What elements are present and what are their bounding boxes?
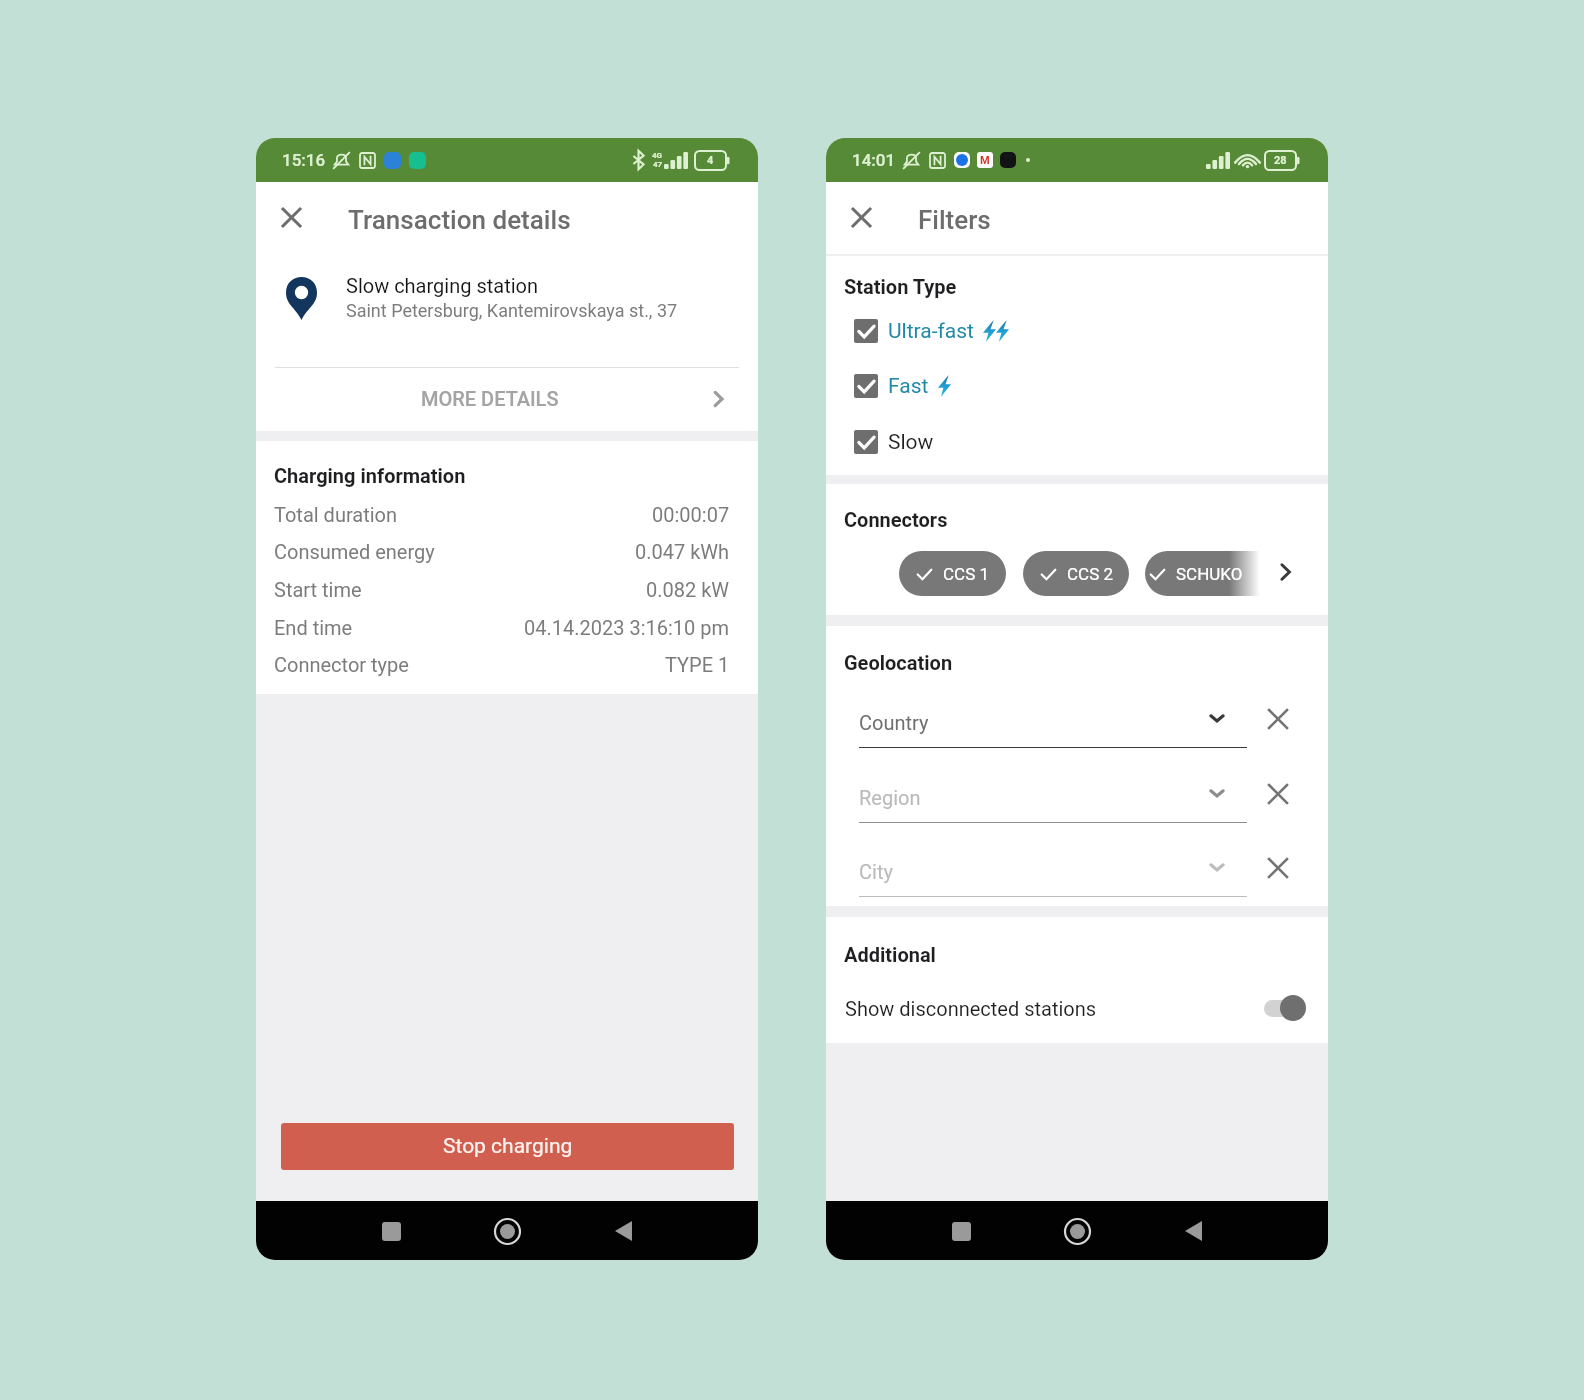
staticText: TYPE 1 [665,653,730,676]
button[interactable]: Back [1172,1210,1214,1252]
staticText: Connector type [274,653,409,676]
staticText: Ultra-fast [888,319,974,344]
button[interactable]: SCHUKO [1145,551,1285,596]
staticText: 04.14.2023 3:16:10 pm [524,616,730,639]
staticText: 00:00:07 [652,503,730,526]
staticText: 47 [653,160,663,169]
staticText: Start time [274,578,362,601]
button[interactable]: Recents [370,1210,412,1252]
button[interactable]: MORE DETAILS [256,368,758,431]
button[interactable]: Clear Region [1258,774,1298,814]
button[interactable]: Clear City [1258,848,1298,888]
staticText: Stop charging [443,1134,573,1159]
staticText: Additional [844,943,936,966]
staticText: Consumed energy [274,540,435,563]
button[interactable]: Fast [826,366,1328,406]
staticText: End time [274,616,353,639]
staticText: Saint Petersburg, Kantemirovskaya st., 3… [346,300,678,321]
button[interactable]: Stop charging [281,1123,734,1170]
button[interactable]: CCS 1 [899,551,1006,596]
button[interactable]: Region [859,783,1247,823]
staticText: 0.047 kWh [635,540,730,563]
staticText: 15:16 [282,150,326,170]
staticText: Slow [888,430,934,455]
staticText: M [980,154,990,167]
staticText: 4G [652,151,663,160]
button[interactable]: More connectors [1271,558,1299,586]
button[interactable]: Close [267,193,315,241]
staticText: SCHUKO [1176,564,1243,584]
button[interactable]: Recents [940,1210,982,1252]
staticText: Country [859,711,929,734]
staticText: CCS 2 [1067,564,1113,584]
staticText: MORE DETAILS [421,387,559,410]
staticText: Connectors [844,508,948,531]
staticText: Transaction details [348,205,571,235]
button[interactable]: Home [1056,1210,1098,1252]
staticText: Slow charging station [346,274,539,297]
staticText: Station Type [844,275,957,298]
button[interactable]: Clear Country [1258,699,1298,739]
button[interactable]: Home [486,1210,528,1252]
staticText: 14:01 [852,150,896,170]
button[interactable]: City [859,857,1247,897]
button[interactable]: CCS 2 [1023,551,1129,596]
button[interactable]: Close [837,193,885,241]
staticText: Charging information [274,464,466,487]
staticText: 28 [1274,154,1287,167]
staticText: Fast [888,374,929,399]
button[interactable]: Show disconnected stations [826,988,1328,1028]
button[interactable]: Ultra-fast [826,311,1328,351]
button[interactable]: Slow [826,422,1328,462]
staticText: Region [859,786,921,809]
staticText: 4 [707,154,714,167]
staticText: Total duration [274,503,398,526]
staticText: City [859,860,893,883]
button[interactable]: Country [859,708,1247,748]
staticText: Geolocation [844,651,953,674]
staticText: 0.082 kW [646,578,730,601]
button[interactable]: Back [602,1210,644,1252]
staticText: Filters [918,205,991,235]
staticText: CCS 1 [943,564,989,584]
staticText: Show disconnected stations [845,997,1097,1020]
